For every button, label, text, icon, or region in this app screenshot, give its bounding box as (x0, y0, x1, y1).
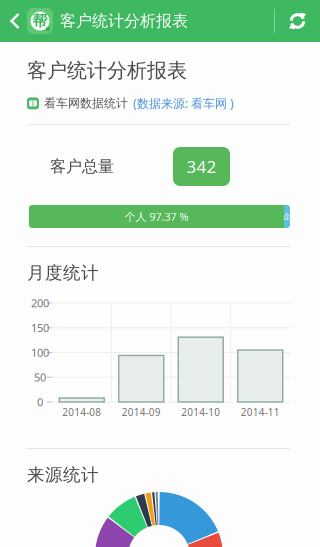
staticText: 2014-11 (241, 405, 280, 419)
staticText: 0 (37, 394, 43, 409)
staticText: 看车网数据统计 (44, 96, 128, 111)
staticText: 企 (283, 211, 291, 222)
staticText: 200 (31, 295, 49, 310)
staticText: 100 (31, 345, 49, 360)
staticText: 2014-10 (181, 405, 220, 419)
button[interactable]: Refresh (275, 0, 320, 42)
staticText: 150 (31, 320, 49, 335)
staticText: (数据来源: 看车网 ) (133, 95, 234, 111)
staticText: 个人 97.37 % (124, 209, 188, 224)
staticText: 客户总量 (50, 156, 114, 177)
staticText: 来源统计 (27, 464, 99, 486)
staticText: 客户统计分析报表 (60, 11, 188, 31)
staticText: 月度统计 (27, 262, 99, 284)
staticText: 50 (34, 370, 46, 385)
staticText: 帮 (32, 12, 47, 30)
staticText: 2014-09 (122, 405, 161, 419)
staticText: 2014-08 (62, 405, 101, 419)
staticText: 342 (186, 155, 216, 178)
staticText: 客户统计分析报表 (27, 58, 187, 83)
button[interactable]: Back (0, 0, 27, 42)
